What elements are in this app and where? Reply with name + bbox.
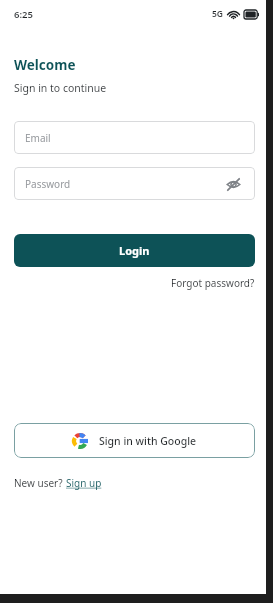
staticText: Sign in to continue	[14, 81, 107, 95]
staticText: Forgot password?	[171, 276, 255, 290]
button[interactable]: Password	[14, 167, 255, 200]
button[interactable]: Show password	[222, 173, 244, 195]
staticText: Email	[25, 131, 51, 145]
staticText: Welcome	[14, 56, 76, 74]
staticText: Login	[119, 243, 150, 258]
staticText: New user?	[14, 476, 66, 490]
staticText: Sign up	[66, 476, 102, 490]
button[interactable]: Sign up	[66, 476, 102, 490]
button[interactable]: Forgot password?	[171, 276, 255, 290]
staticText: 5G	[212, 8, 224, 20]
button[interactable]: Email	[14, 121, 255, 154]
staticText: Sign in with Google	[99, 434, 197, 448]
button[interactable]: Login	[14, 234, 255, 267]
staticText: 6:25	[14, 8, 33, 21]
button[interactable]: Sign in with Google	[14, 423, 255, 458]
staticText: Password	[25, 177, 71, 191]
